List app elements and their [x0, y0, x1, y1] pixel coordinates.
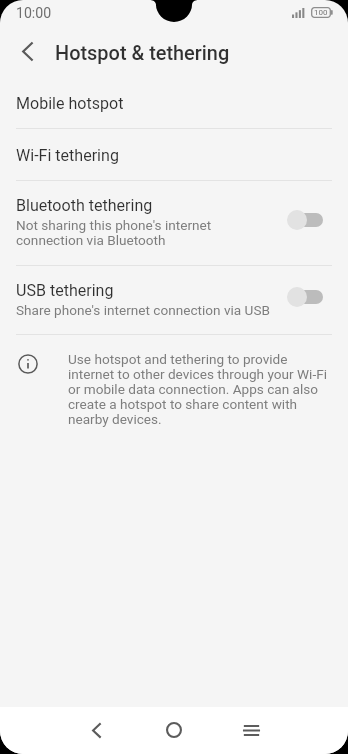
staticText: Bluetooth tethering — [16, 196, 153, 215]
button[interactable]: Toggle — [287, 210, 323, 230]
button[interactable]: USB tethering — [0, 266, 348, 334]
button[interactable]: Back — [72, 707, 120, 753]
button[interactable]: Home — [150, 707, 198, 753]
button[interactable]: Recent apps — [227, 707, 275, 753]
staticText: Share phone's internet connection via US… — [16, 302, 270, 318]
staticText: Hotspot & tethering — [55, 42, 230, 65]
button[interactable]: Navigate up — [3, 27, 51, 75]
button[interactable]: Wi-Fi tethering — [0, 129, 348, 180]
button[interactable]: Toggle — [287, 287, 323, 307]
button[interactable]: Bluetooth tethering — [0, 181, 348, 265]
staticText: Not sharing this phone's internet connec… — [16, 217, 212, 248]
staticText: USB tethering — [16, 281, 114, 300]
staticText: Wi-Fi tethering — [16, 146, 119, 165]
staticText: Mobile hotspot — [16, 94, 124, 113]
staticText: 10:00 — [16, 5, 52, 22]
staticText: Use hotspot and tethering to provide int… — [68, 351, 333, 427]
staticText: 100 — [314, 8, 328, 17]
button[interactable]: Mobile hotspot — [0, 76, 348, 128]
